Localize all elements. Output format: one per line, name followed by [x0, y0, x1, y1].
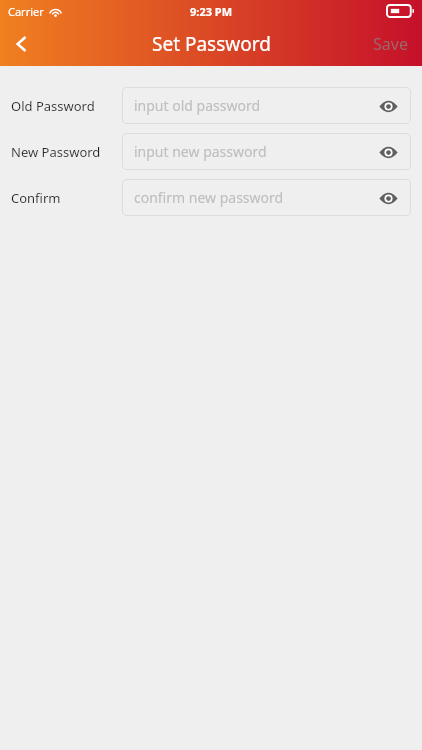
button[interactable]: Show password	[375, 185, 401, 211]
button[interactable]: Show password	[375, 139, 401, 165]
button[interactable]: confirm new password	[122, 179, 411, 216]
staticText: New Password	[11, 143, 101, 161]
staticText: Old Password	[11, 97, 95, 115]
staticText: 9:23 PM	[190, 4, 233, 19]
staticText: confirm new password	[134, 188, 284, 207]
staticText: Carrier	[8, 4, 44, 19]
button[interactable]: input old password	[122, 87, 411, 124]
staticText: input new password	[134, 142, 267, 161]
button[interactable]: Save	[359, 23, 422, 65]
staticText: Set Password	[152, 31, 271, 57]
button[interactable]: input new password	[122, 133, 411, 170]
button[interactable]: Show password	[375, 93, 401, 119]
staticText: Confirm	[11, 189, 61, 207]
button[interactable]: Back	[0, 22, 44, 66]
staticText: Save	[373, 33, 408, 55]
staticText: input old password	[134, 96, 261, 115]
